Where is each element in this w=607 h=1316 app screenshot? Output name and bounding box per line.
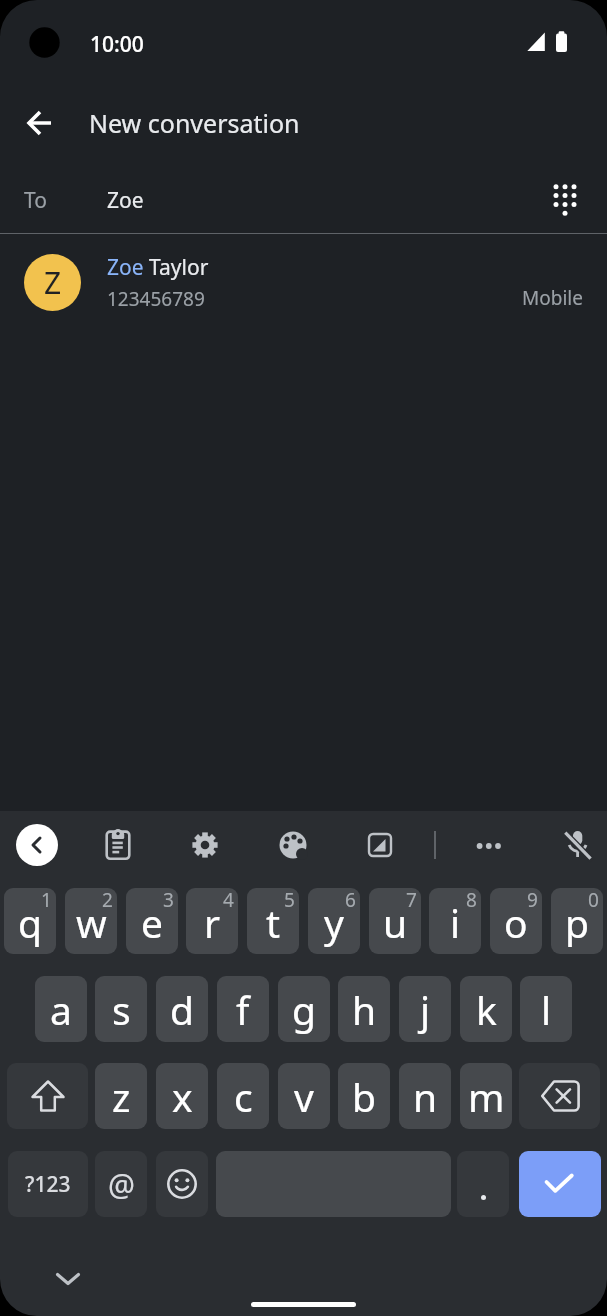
button[interactable]: i: [429, 888, 481, 954]
staticText: h: [352, 983, 377, 1036]
staticText: l: [541, 983, 552, 1036]
staticText: o: [504, 896, 528, 949]
button[interactable]: l: [520, 976, 572, 1042]
button[interactable]: [457, 1151, 509, 1217]
staticText: d: [170, 983, 194, 1036]
staticText: e: [141, 896, 163, 949]
button[interactable]: [16, 99, 64, 147]
staticText: u: [383, 896, 408, 949]
staticText: 7: [406, 888, 417, 913]
button[interactable]: m: [460, 1063, 512, 1129]
button[interactable]: [556, 821, 604, 869]
staticText: 8: [466, 888, 477, 913]
staticText: 4: [223, 888, 234, 913]
button[interactable]: o: [490, 888, 542, 954]
staticText: ?123: [25, 1170, 71, 1199]
button[interactable]: [7, 1063, 88, 1129]
button[interactable]: [356, 821, 404, 869]
staticText: Zoe Taylor: [107, 253, 209, 282]
staticText: i: [450, 896, 461, 949]
button[interactable]: z: [95, 1063, 147, 1129]
staticText: c: [234, 1070, 253, 1123]
button[interactable]: @: [95, 1151, 147, 1217]
staticText: To: [24, 186, 47, 215]
staticText: r: [204, 896, 221, 949]
staticText: t: [266, 896, 281, 949]
staticText: x: [172, 1070, 193, 1123]
staticText: m: [468, 1070, 505, 1123]
staticText: 10:00: [90, 30, 144, 59]
staticText: j: [420, 983, 431, 1036]
staticText: 0: [588, 888, 599, 913]
staticText: 123456789: [107, 286, 205, 312]
staticText: w: [76, 896, 107, 949]
button[interactable]: Z: [0, 234, 607, 330]
button[interactable]: [44, 1254, 92, 1302]
button[interactable]: w: [65, 888, 117, 954]
button[interactable]: v: [278, 1063, 330, 1129]
button[interactable]: r: [186, 888, 238, 954]
staticText: s: [112, 983, 131, 1036]
button[interactable]: x: [156, 1063, 208, 1129]
button[interactable]: [269, 821, 317, 869]
button[interactable]: d: [156, 976, 208, 1042]
button[interactable]: a: [35, 976, 87, 1042]
staticText: f: [236, 983, 250, 1036]
staticText: q: [18, 896, 42, 949]
staticText: 3: [163, 888, 174, 913]
staticText: g: [292, 983, 316, 1036]
staticText: @: [108, 1164, 135, 1205]
button[interactable]: [519, 1063, 600, 1129]
staticText: b: [352, 1070, 376, 1123]
staticText: Z: [44, 262, 62, 303]
staticText: n: [413, 1070, 438, 1123]
staticText: Zoe: [107, 186, 144, 215]
button[interactable]: g: [278, 976, 330, 1042]
button[interactable]: [541, 176, 589, 224]
staticText: 6: [345, 888, 356, 913]
button[interactable]: u: [369, 888, 421, 954]
button[interactable]: p: [551, 888, 603, 954]
staticText: a: [50, 983, 72, 1036]
button[interactable]: c: [217, 1063, 269, 1129]
staticText: Mobile: [522, 285, 583, 311]
button[interactable]: j: [399, 976, 451, 1042]
staticText: k: [476, 983, 497, 1036]
staticText: p: [565, 896, 589, 949]
button[interactable]: s: [95, 976, 147, 1042]
button[interactable]: [464, 821, 512, 869]
staticText: z: [112, 1070, 131, 1123]
button[interactable]: [94, 821, 142, 869]
staticText: 9: [527, 888, 538, 913]
button[interactable]: [181, 821, 229, 869]
button[interactable]: k: [460, 976, 512, 1042]
staticText: New conversation: [89, 106, 300, 140]
button[interactable]: To: [0, 166, 607, 233]
button[interactable]: y: [308, 888, 360, 954]
button[interactable]: f: [217, 976, 269, 1042]
button[interactable]: n: [399, 1063, 451, 1129]
button[interactable]: [519, 1151, 601, 1217]
button[interactable]: q: [4, 888, 56, 954]
button[interactable]: [16, 824, 58, 866]
button[interactable]: [156, 1151, 208, 1217]
staticText: 2: [102, 888, 113, 913]
button[interactable]: h: [338, 976, 390, 1042]
staticText: y: [324, 896, 344, 949]
button[interactable]: ?123: [8, 1151, 88, 1217]
staticText: v: [294, 1070, 314, 1123]
button[interactable]: t: [247, 888, 299, 954]
staticText: 5: [284, 888, 295, 913]
staticText: 1: [41, 888, 52, 913]
button[interactable]: b: [338, 1063, 390, 1129]
button[interactable]: e: [126, 888, 178, 954]
